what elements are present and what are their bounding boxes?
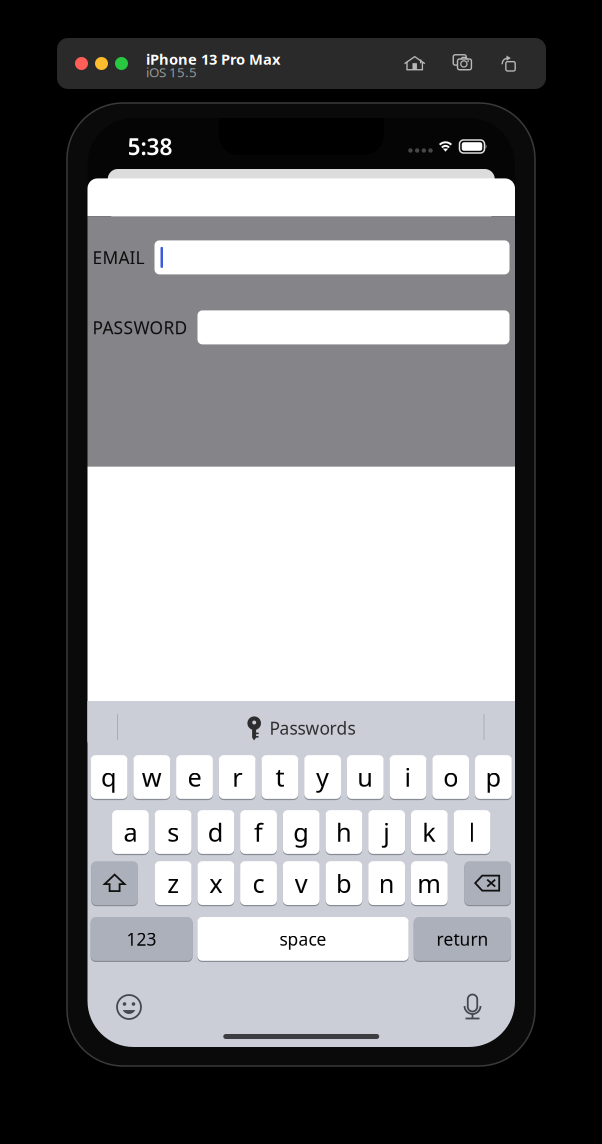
staticText: o — [443, 760, 458, 794]
button[interactable]: f — [240, 809, 277, 855]
button[interactable]: c — [240, 860, 277, 906]
staticText: EMAIL — [92, 246, 144, 269]
button[interactable]: Screenshot — [446, 46, 478, 78]
staticText: z — [167, 866, 179, 900]
button[interactable]: l — [454, 809, 490, 855]
staticText: iOS 15.5 — [146, 63, 197, 81]
staticText: j — [383, 815, 390, 849]
staticText: t — [275, 760, 284, 794]
staticText: i — [404, 760, 411, 794]
button[interactable]: Passwords — [241, 710, 361, 746]
button[interactable]: return — [414, 916, 511, 962]
button[interactable]: g — [283, 809, 320, 855]
button[interactable]: e — [176, 754, 213, 800]
staticText: y — [316, 760, 329, 794]
staticText: c — [253, 866, 265, 900]
staticText: e — [187, 760, 201, 794]
staticText: 123 — [127, 927, 157, 950]
button[interactable]: Dictation — [460, 994, 484, 1020]
button[interactable]: Shift — [91, 860, 138, 906]
staticText: space — [279, 927, 326, 950]
staticText: u — [357, 760, 373, 794]
button[interactable]: x — [197, 860, 234, 906]
staticText: h — [336, 815, 352, 849]
staticText: g — [293, 815, 309, 849]
button[interactable]: w — [133, 754, 170, 800]
button[interactable]: z — [155, 860, 192, 906]
staticText: 5:38 — [127, 131, 172, 162]
staticText: iPhone 13 Pro Max — [146, 49, 280, 69]
button[interactable]: k — [411, 809, 448, 855]
button[interactable]: space — [197, 916, 409, 962]
staticText: b — [336, 866, 352, 900]
staticText: return — [436, 927, 488, 950]
button[interactable]: a — [112, 809, 149, 855]
button[interactable]: Delete — [464, 860, 511, 906]
button[interactable]: d — [197, 809, 234, 855]
staticText: n — [379, 866, 395, 900]
button[interactable]: i — [390, 754, 426, 800]
button[interactable]: PASSWORD — [197, 310, 509, 344]
button[interactable]: t — [261, 754, 298, 800]
button[interactable]: y — [304, 754, 341, 800]
staticText: Passwords — [269, 716, 355, 739]
button[interactable]: p — [475, 754, 512, 800]
staticText: v — [295, 866, 308, 900]
staticText: k — [422, 815, 436, 849]
button[interactable]: q — [91, 754, 127, 800]
staticText: a — [123, 815, 137, 849]
button[interactable]: j — [368, 809, 405, 855]
staticText: d — [208, 815, 224, 849]
button[interactable]: b — [326, 860, 362, 906]
button[interactable]: Share — [492, 47, 524, 79]
staticText: w — [142, 760, 162, 794]
staticText: s — [167, 815, 179, 849]
button[interactable]: h — [325, 809, 362, 855]
button[interactable]: Home — [399, 48, 431, 80]
staticText: q — [101, 760, 117, 794]
button[interactable]: EMAIL — [154, 240, 509, 274]
button[interactable]: s — [155, 809, 192, 855]
button[interactable]: Emoji keyboard — [116, 994, 142, 1020]
button[interactable]: o — [432, 754, 469, 800]
staticText: PASSWORD — [92, 316, 187, 339]
staticText: l — [469, 815, 476, 849]
button[interactable]: 123 — [91, 916, 192, 962]
staticText: m — [417, 866, 441, 900]
button[interactable]: u — [347, 754, 384, 800]
staticText: p — [485, 760, 501, 794]
button[interactable]: r — [219, 754, 256, 800]
button[interactable]: v — [283, 860, 320, 906]
button[interactable]: m — [411, 860, 448, 906]
staticText: f — [254, 815, 263, 849]
staticText: x — [209, 866, 222, 900]
button[interactable]: n — [368, 860, 405, 906]
staticText: r — [232, 760, 242, 794]
